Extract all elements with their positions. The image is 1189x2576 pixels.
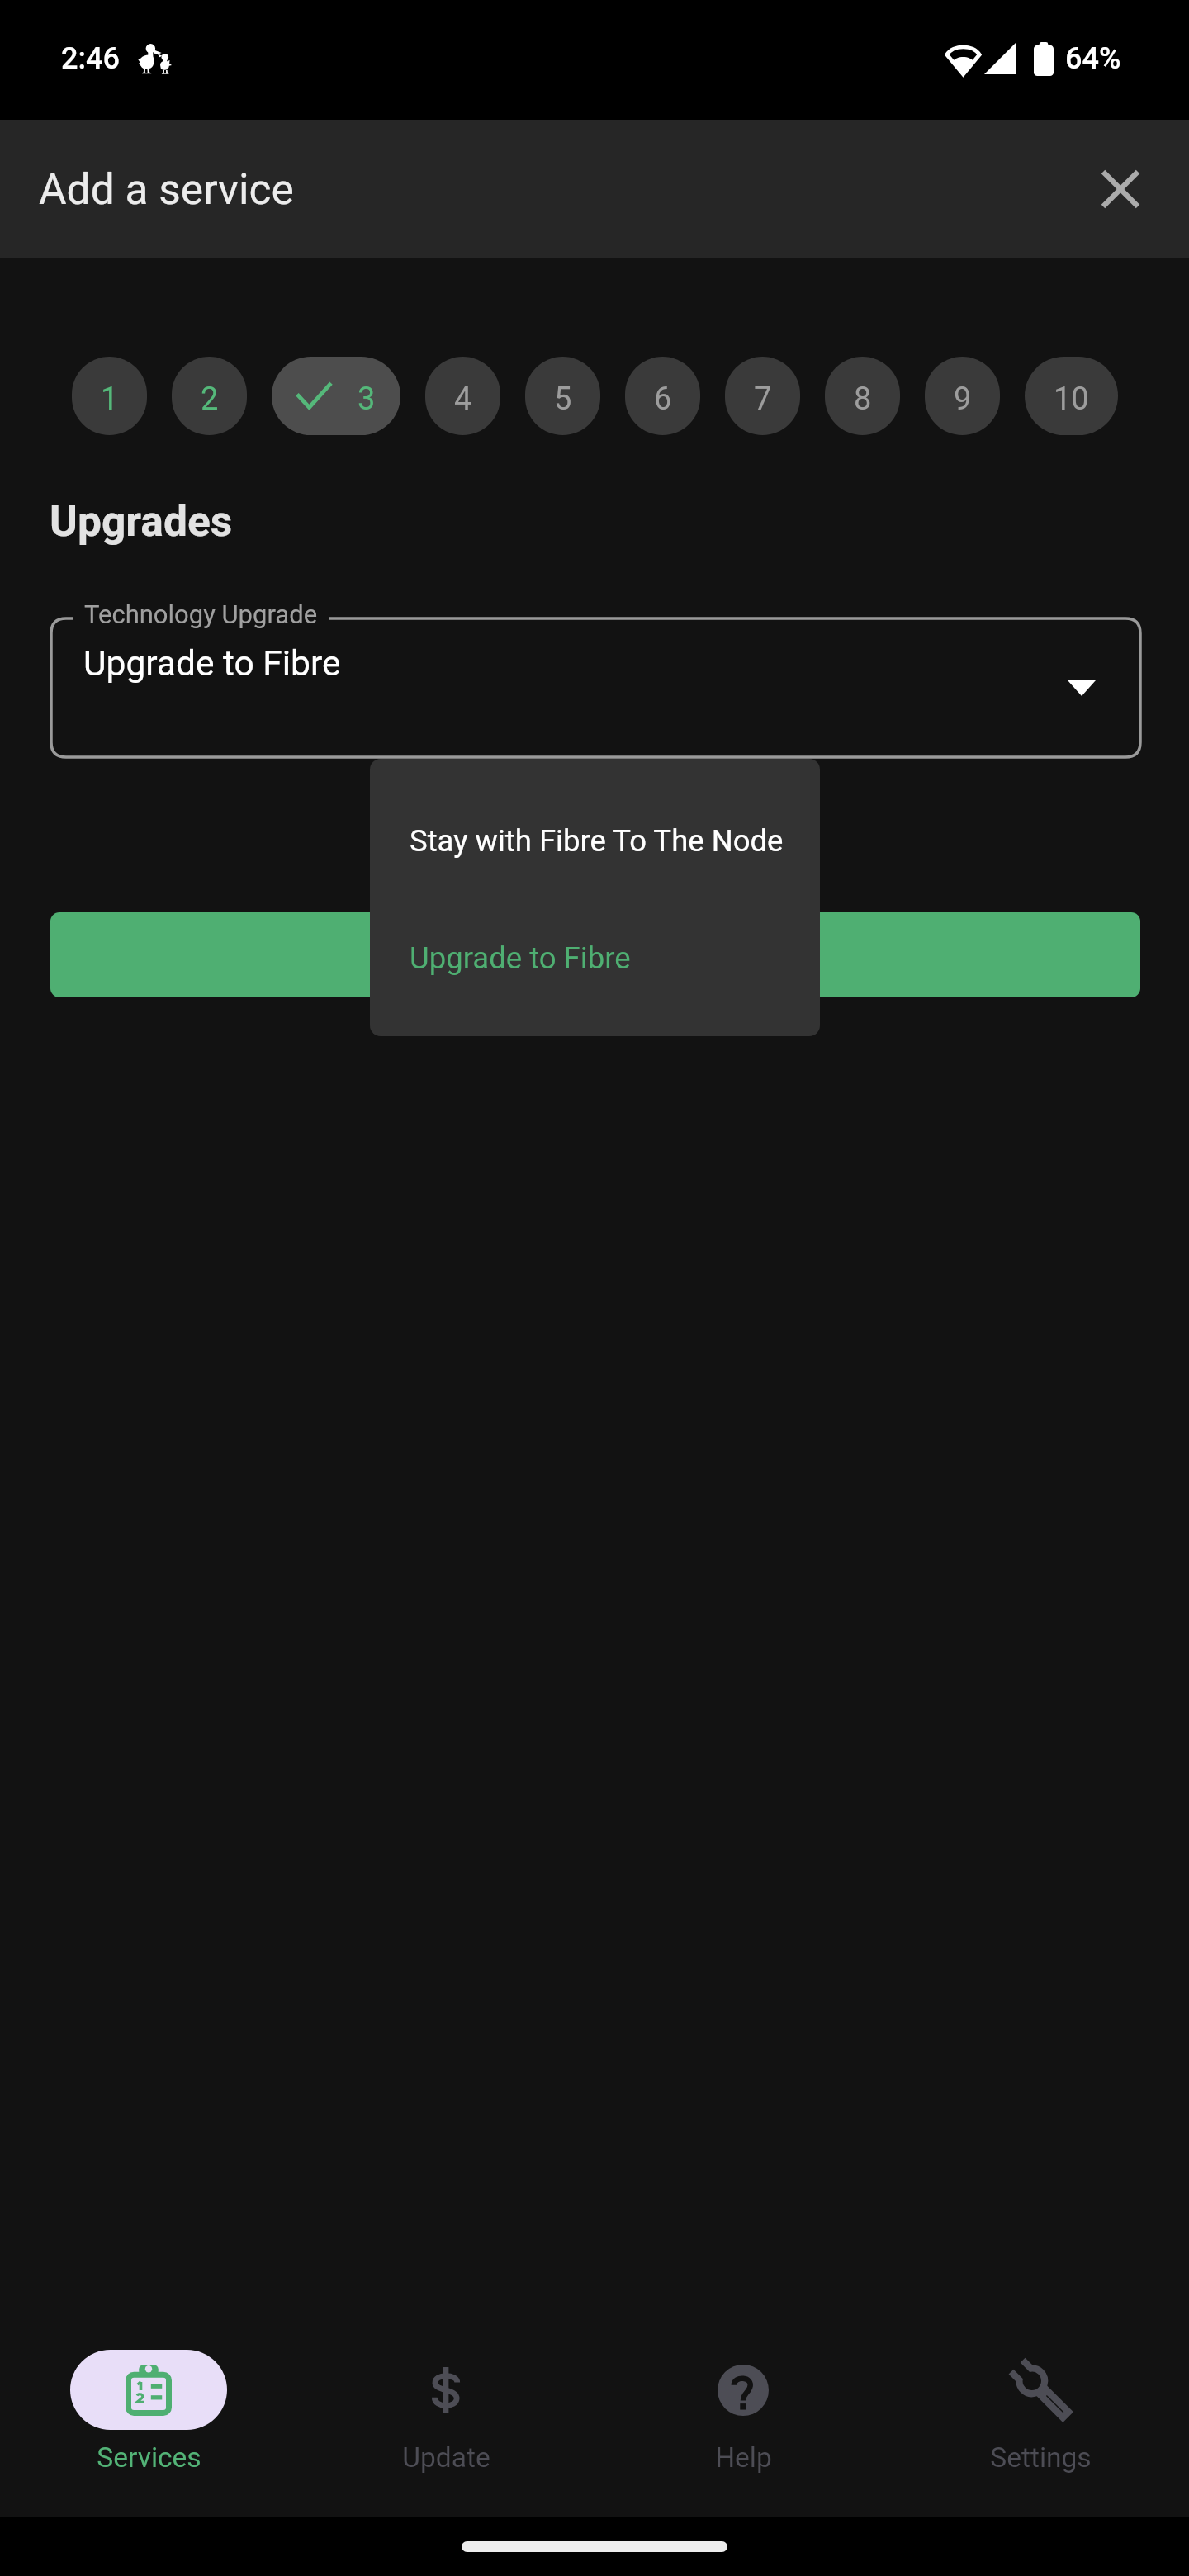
button[interactable]: Update xyxy=(297,2304,594,2517)
staticText: Update xyxy=(402,2441,490,2474)
staticText: Settings xyxy=(990,2441,1092,2474)
staticText: Technology Upgrade xyxy=(84,599,318,629)
button[interactable]: 8 xyxy=(825,357,900,435)
staticText: 9 xyxy=(954,381,972,418)
staticText: Upgrades xyxy=(50,496,233,546)
staticText: Help xyxy=(715,2441,772,2474)
staticText: 7 xyxy=(754,381,772,418)
button[interactable]: 6 xyxy=(625,357,700,435)
staticText: 1 xyxy=(101,381,119,418)
button[interactable]: 3 xyxy=(272,357,400,435)
staticText: 5 xyxy=(554,381,572,418)
button[interactable]: Upgrade to Fibre xyxy=(370,899,820,1036)
button[interactable]: 2 xyxy=(172,357,247,435)
button[interactable] xyxy=(50,912,1140,997)
staticText: 2 xyxy=(201,381,219,418)
staticText: Upgrade to Fibre xyxy=(83,643,341,684)
staticText: Upgrade to Fibre xyxy=(410,940,631,976)
staticText: Services xyxy=(97,2441,201,2474)
staticText: 64% xyxy=(1065,41,1121,76)
staticText: Stay with Fibre To The Node xyxy=(410,823,784,859)
staticText: Add a service xyxy=(39,164,294,214)
button[interactable]: 10 xyxy=(1025,357,1118,435)
button[interactable]: 4 xyxy=(425,357,500,435)
button[interactable]: Settings xyxy=(892,2304,1189,2517)
button[interactable]: 5 xyxy=(525,357,600,435)
staticText: 10 xyxy=(1054,381,1089,418)
staticText: 8 xyxy=(854,381,872,418)
button[interactable]: Stay with Fibre To The Node xyxy=(370,759,820,899)
button[interactable]: Services xyxy=(0,2304,297,2517)
staticText: 2:46 xyxy=(61,41,120,76)
button[interactable]: Help xyxy=(594,2304,892,2517)
staticText: 6 xyxy=(654,381,672,418)
staticText: 4 xyxy=(454,381,472,418)
button[interactable]: 1 xyxy=(72,357,147,435)
button[interactable]: 9 xyxy=(925,357,1000,435)
button[interactable]: 7 xyxy=(725,357,800,435)
button[interactable]: Open dropdown xyxy=(1049,655,1115,721)
button[interactable]: Close xyxy=(1075,144,1166,234)
staticText: 3 xyxy=(358,381,376,418)
